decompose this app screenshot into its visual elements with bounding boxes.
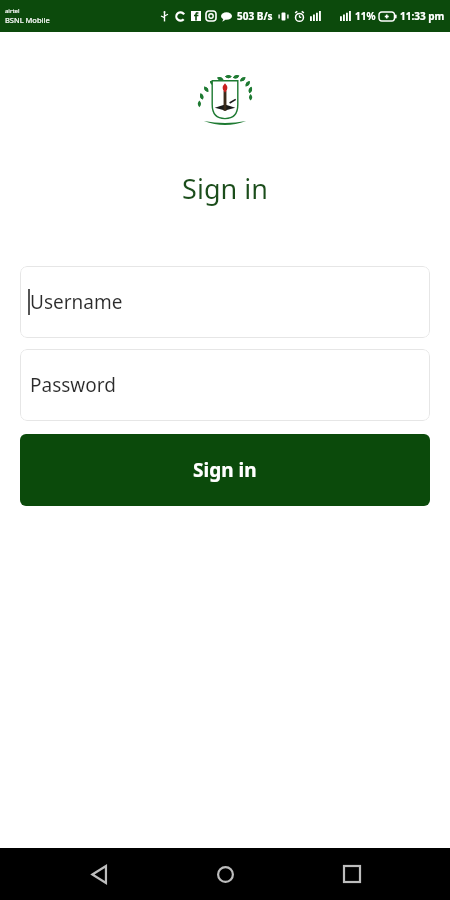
- button[interactable]: Username: [20, 266, 430, 338]
- button[interactable]: Back: [71, 848, 127, 900]
- staticText: 11%: [355, 9, 376, 23]
- staticText: Username: [30, 289, 123, 315]
- staticText: Sign in: [182, 170, 268, 207]
- staticText: Password: [30, 372, 116, 398]
- staticText: 503 B/s: [237, 9, 273, 23]
- button[interactable]: Password: [20, 349, 430, 421]
- button[interactable]: Home: [197, 848, 253, 900]
- staticText: BSNL Mobile: [5, 15, 50, 25]
- staticText: airtel: [5, 7, 20, 15]
- staticText: Sign in: [193, 457, 257, 483]
- staticText: 11:33 pm: [400, 9, 445, 23]
- button[interactable]: Recent apps: [324, 848, 380, 900]
- button[interactable]: Sign in: [20, 434, 430, 506]
